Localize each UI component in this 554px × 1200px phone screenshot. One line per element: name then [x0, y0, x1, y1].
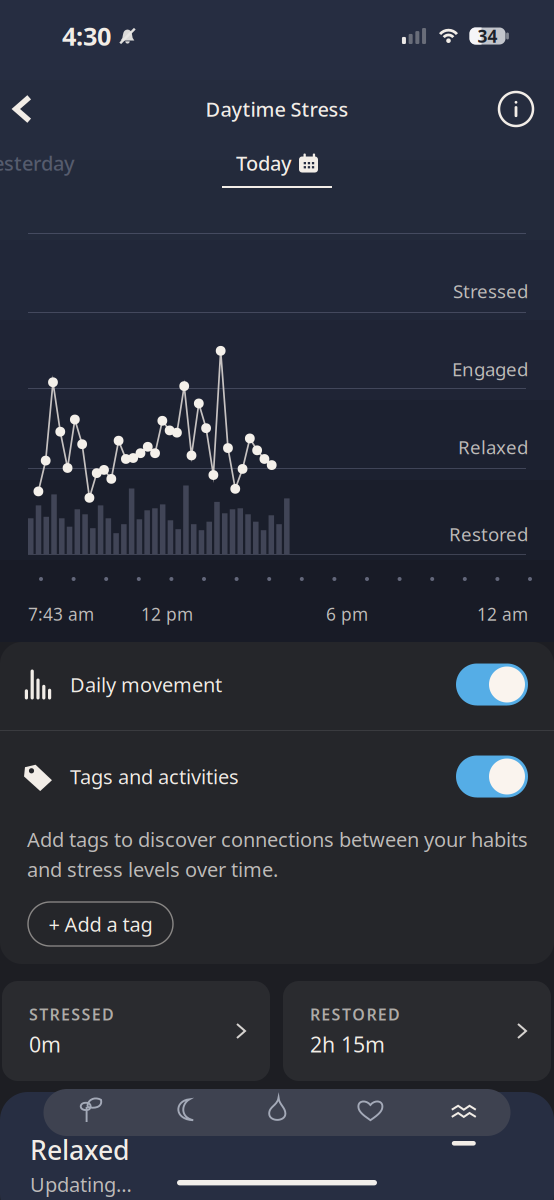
staticText: 7:43 am [28, 602, 94, 625]
button[interactable]: Stress [417, 1089, 510, 1146]
staticText: 0m [29, 1030, 61, 1058]
staticText: 2h 15m [310, 1030, 385, 1058]
staticText: + Add a tag [48, 911, 152, 937]
button[interactable]: Tags and activities [0, 731, 554, 822]
staticText: 6 pm [326, 602, 368, 625]
button[interactable]: Information [490, 88, 542, 130]
staticText: Add tags to discover connections between… [27, 826, 528, 853]
button[interactable]: + Add a tag [28, 902, 173, 946]
staticText: Daily movement [70, 671, 222, 698]
staticText: Updating… [30, 1171, 132, 1198]
staticText: Tags and activities [70, 763, 239, 790]
staticText: Engaged [452, 357, 528, 381]
button[interactable]: Sleep [137, 1089, 230, 1146]
button[interactable]: RESTORED [283, 981, 551, 1081]
staticText: 12 am [477, 602, 528, 625]
staticText: RESTORED [310, 1004, 400, 1025]
staticText: esterday [0, 150, 75, 176]
button[interactable]: Heart [324, 1089, 417, 1146]
staticText: Stressed [453, 279, 528, 303]
staticText: 12 pm [141, 602, 193, 625]
button[interactable]: Energy [230, 1089, 324, 1146]
staticText: Daytime Stress [205, 96, 348, 122]
staticText: 34 [477, 24, 497, 47]
button[interactable]: Today [212, 150, 342, 188]
staticText: and stress levels over time. [27, 856, 278, 883]
button[interactable]: Daily movement [0, 639, 554, 730]
button[interactable]: esterday [0, 148, 103, 178]
button[interactable]: Back [0, 88, 45, 130]
staticText: Today [236, 150, 292, 176]
staticText: Restored [449, 522, 528, 546]
staticText: STRESSED [29, 1004, 114, 1025]
button[interactable]: STRESSED [2, 981, 270, 1081]
staticText: 4:30 [62, 19, 111, 53]
button[interactable]: Activity [43, 1089, 137, 1146]
staticText: Relaxed [458, 435, 528, 459]
staticText: Relaxed [30, 1132, 130, 1167]
